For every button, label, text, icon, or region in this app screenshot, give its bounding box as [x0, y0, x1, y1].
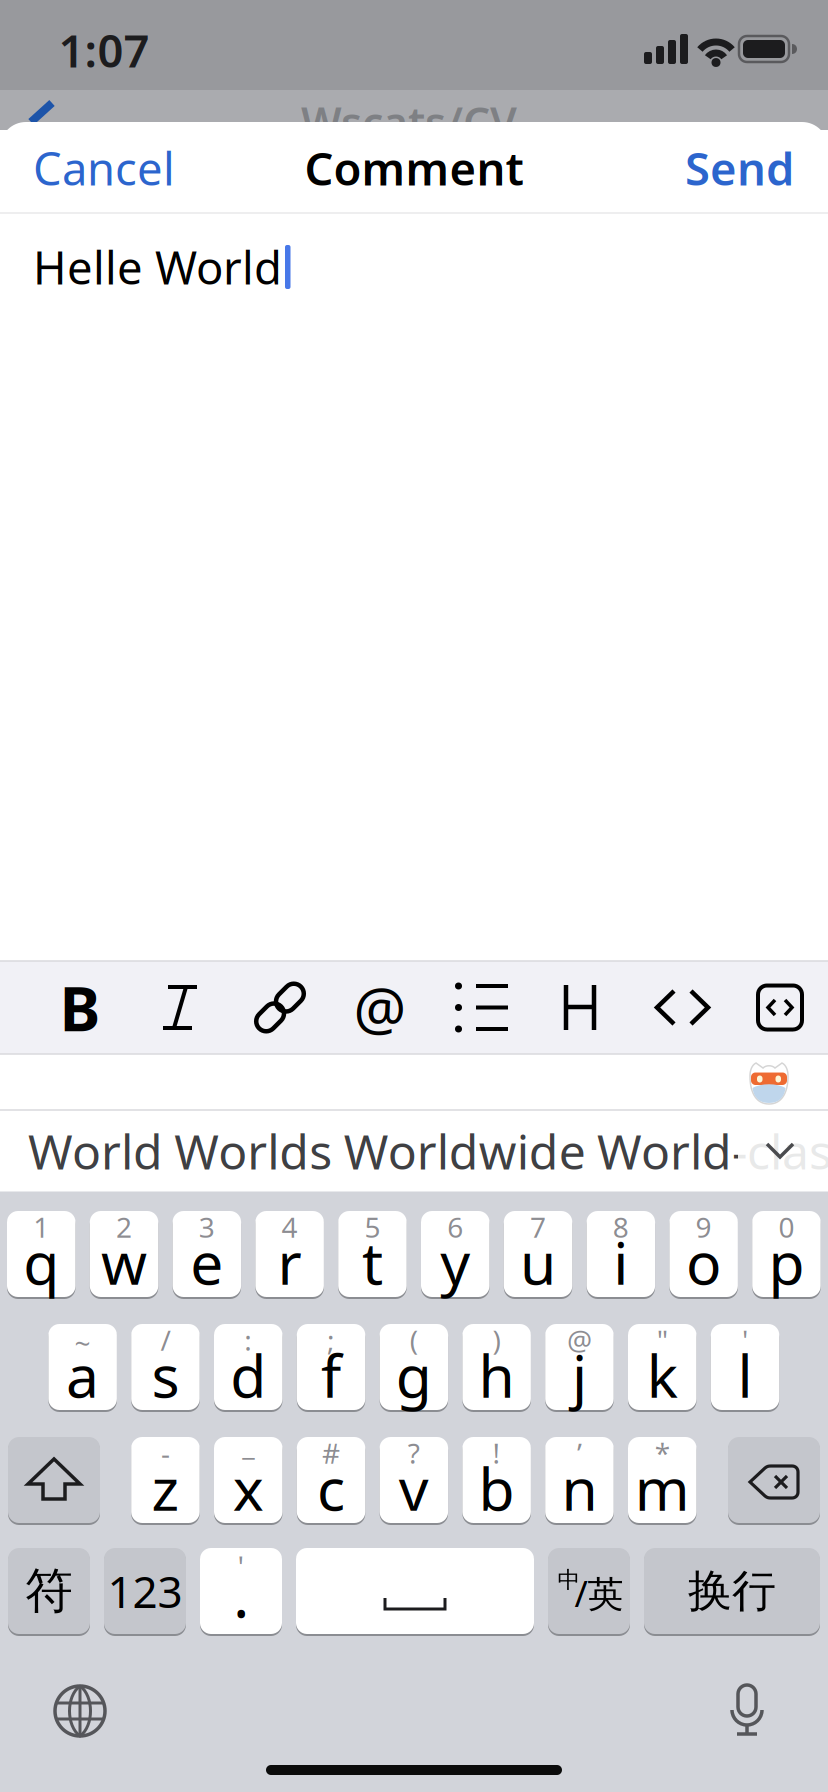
button[interactable]: a: [48, 1323, 117, 1411]
staticText: -: [161, 1434, 170, 1472]
button[interactable]: y: [421, 1210, 489, 1298]
button[interactable]: Worldwide: [344, 1119, 586, 1183]
button[interactable]: Return: [644, 1547, 820, 1635]
staticText: !: [493, 1434, 501, 1472]
staticText: Cancel: [33, 138, 175, 198]
button[interactable]: g: [380, 1323, 448, 1411]
button[interactable]: r: [255, 1210, 324, 1298]
staticText: Wscats/CV: [301, 94, 517, 150]
button[interactable]: Cancel: [33, 138, 175, 198]
button[interactable]: Space: [296, 1547, 534, 1635]
button[interactable]: j: [545, 1323, 614, 1411]
button[interactable]: e: [173, 1210, 241, 1298]
staticText: x: [233, 1449, 264, 1527]
staticText: Helle World: [33, 237, 282, 297]
staticText: a: [66, 1336, 99, 1414]
staticText: World-class: [597, 1119, 828, 1183]
staticText: b: [479, 1449, 515, 1527]
button[interactable]: x: [214, 1436, 282, 1524]
staticText: 3: [199, 1208, 215, 1246]
staticText: B: [59, 967, 100, 1048]
staticText: 符: [25, 1561, 73, 1620]
staticText: j: [572, 1336, 587, 1414]
button[interactable]: l: [711, 1323, 779, 1411]
staticText: 9: [696, 1208, 712, 1246]
button[interactable]: Delete: [728, 1436, 820, 1524]
button[interactable]: i: [587, 1210, 655, 1298]
staticText: p: [768, 1223, 804, 1301]
staticText: n: [561, 1449, 597, 1527]
button[interactable]: z: [131, 1436, 200, 1524]
button[interactable]: h: [462, 1323, 531, 1411]
staticText: g: [396, 1336, 432, 1414]
button[interactable]: f: [297, 1323, 365, 1411]
button[interactable]: Worlds: [174, 1119, 332, 1183]
staticText: 4: [282, 1208, 298, 1246]
button[interactable]: q: [7, 1210, 75, 1298]
button[interactable]: World-class: [597, 1119, 828, 1183]
staticText: 换行: [688, 1564, 776, 1618]
staticText: q: [23, 1223, 59, 1301]
staticText: /: [160, 1321, 170, 1359]
staticText: Comment: [304, 138, 523, 198]
button[interactable]: p: [752, 1210, 821, 1298]
staticText: k: [647, 1336, 678, 1414]
staticText: ): [493, 1321, 501, 1359]
button[interactable]: n: [545, 1436, 614, 1524]
button[interactable]: Collapse suggestions: [764, 1141, 796, 1161]
staticText: z: [151, 1449, 179, 1527]
button[interactable]: Numbers: [104, 1547, 186, 1635]
staticText: 7: [530, 1208, 546, 1246]
staticText: *: [655, 1434, 670, 1472]
staticText: :: [244, 1321, 252, 1359]
staticText: r: [278, 1223, 302, 1301]
staticText: c: [317, 1449, 345, 1527]
button[interactable]: t: [338, 1210, 407, 1298]
staticText: ': [237, 1546, 244, 1585]
staticText: Worlds: [174, 1119, 332, 1183]
staticText: d: [230, 1336, 266, 1414]
button[interactable]: u: [504, 1210, 572, 1298]
button[interactable]: Chinese/English: [548, 1547, 630, 1635]
staticText: m: [635, 1449, 690, 1527]
button[interactable]: v: [380, 1436, 448, 1524]
button[interactable]: Period: [200, 1547, 282, 1635]
staticText: World: [28, 1119, 163, 1183]
staticText: 123: [107, 1562, 182, 1620]
staticText: Worldwide: [344, 1119, 586, 1183]
staticText: ': [742, 1321, 748, 1359]
button[interactable]: o: [669, 1210, 738, 1298]
staticText: u: [520, 1223, 556, 1301]
button[interactable]: Dictate: [725, 1684, 769, 1736]
staticText: 8: [613, 1208, 629, 1246]
staticText: ;: [327, 1321, 335, 1359]
staticText: /英: [574, 1569, 623, 1617]
staticText: .: [233, 1553, 249, 1635]
staticText: w: [101, 1223, 147, 1301]
button[interactable]: Shift: [8, 1436, 100, 1524]
button[interactable]: GitHub keyboard: [748, 1060, 792, 1108]
staticText: #: [322, 1434, 340, 1472]
button[interactable]: Next keyboard: [52, 1683, 108, 1739]
staticText: 2: [116, 1208, 132, 1246]
staticText: y: [440, 1223, 470, 1301]
button[interactable]: b: [462, 1436, 531, 1524]
staticText: _: [242, 1426, 254, 1464]
button[interactable]: c: [297, 1436, 365, 1524]
button[interactable]: w: [90, 1210, 158, 1298]
button[interactable]: Symbols: [8, 1547, 90, 1635]
button[interactable]: m: [628, 1436, 696, 1524]
staticText: ~: [75, 1324, 91, 1362]
button[interactable]: World: [28, 1119, 163, 1183]
button[interactable]: k: [628, 1323, 696, 1411]
staticText: i: [613, 1223, 628, 1301]
staticText: 0: [778, 1208, 794, 1246]
button[interactable]: d: [214, 1323, 282, 1411]
button[interactable]: Send: [685, 138, 794, 198]
staticText: 中: [557, 1566, 580, 1594]
staticText: ?: [408, 1434, 420, 1472]
staticText: e: [190, 1223, 223, 1301]
staticText: 1: [33, 1208, 49, 1246]
staticText: v: [399, 1449, 429, 1527]
button[interactable]: s: [131, 1323, 200, 1411]
